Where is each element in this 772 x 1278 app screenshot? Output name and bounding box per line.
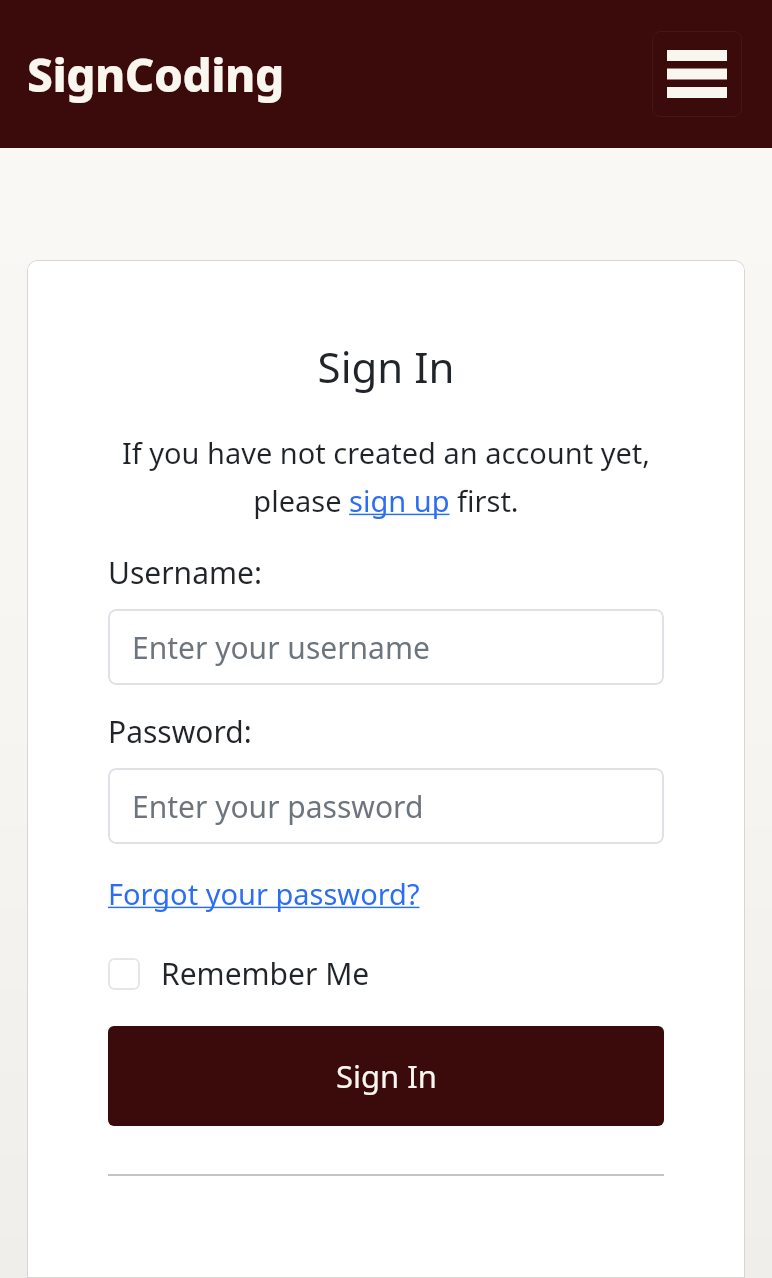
button[interactable]: Forgot your password? <box>108 874 420 913</box>
button[interactable]: Remember Me <box>108 951 370 996</box>
staticText: Forgot your password? <box>108 874 420 913</box>
button[interactable]: Enter your username <box>108 609 664 685</box>
staticText: Username: <box>108 552 262 593</box>
staticText: Remember Me <box>161 953 370 994</box>
button[interactable]: Sign In <box>108 1026 664 1126</box>
button[interactable]: Enter your password <box>108 768 664 844</box>
staticText: If you have not created an account yet, … <box>108 433 664 520</box>
staticText: Sign In <box>108 338 664 395</box>
staticText: Enter your password <box>132 786 424 827</box>
button[interactable]: Open navigation menu <box>652 31 742 117</box>
staticText: Password: <box>108 711 252 752</box>
staticText: Sign In <box>336 1055 437 1097</box>
staticText: SignCoding <box>27 43 284 106</box>
staticText: Enter your username <box>132 627 430 668</box>
